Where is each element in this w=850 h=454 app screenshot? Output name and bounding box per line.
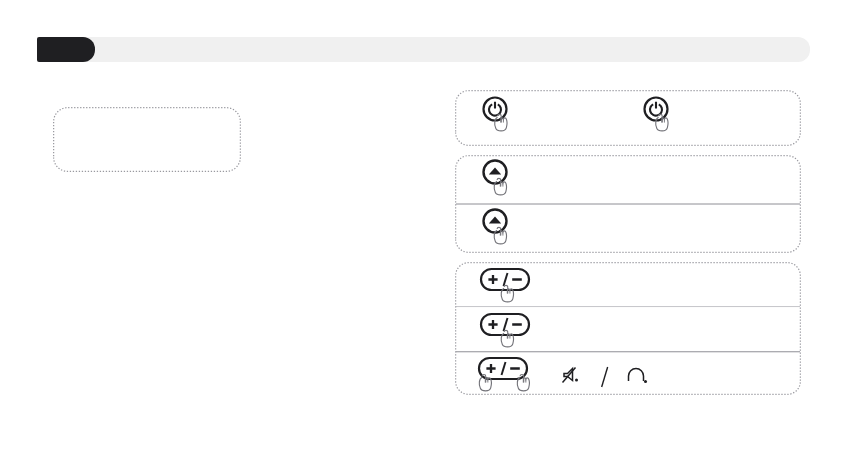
button[interactable]: Press plus or minus button bbox=[455, 262, 801, 395]
button[interactable]: Press plus or minus button bbox=[475, 354, 537, 395]
button[interactable]: Press source button bbox=[455, 155, 801, 253]
button[interactable] bbox=[37, 37, 95, 62]
button[interactable]: Press power button bbox=[641, 95, 679, 139]
button[interactable]: Mute bbox=[559, 363, 585, 389]
button[interactable] bbox=[37, 37, 810, 62]
button[interactable] bbox=[53, 107, 241, 172]
button[interactable]: Press source button bbox=[480, 158, 518, 204]
button[interactable]: Press plus or minus button bbox=[477, 310, 535, 356]
button[interactable]: Press power button bbox=[480, 95, 518, 139]
button[interactable]: Press source button bbox=[480, 207, 518, 253]
button[interactable]: Headphones bbox=[625, 363, 651, 389]
button[interactable]: Press plus or minus button bbox=[477, 265, 535, 311]
button[interactable]: Press power button bbox=[455, 90, 801, 146]
